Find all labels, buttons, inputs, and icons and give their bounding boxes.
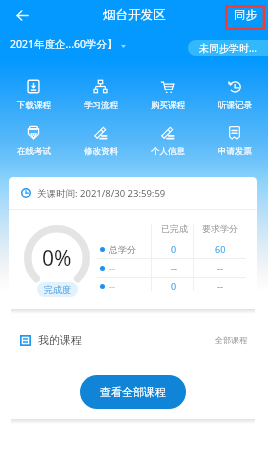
- button[interactable]: 下载课程: [0, 74, 67, 120]
- button[interactable]: 全部课程: [215, 335, 247, 345]
- button[interactable]: 申请发票: [201, 120, 268, 166]
- staticText: 学习流程: [84, 100, 118, 111]
- staticText: 0: [171, 280, 177, 292]
- button[interactable]: 查看全部课程: [80, 375, 186, 409]
- staticText: 未同步学时…: [199, 41, 257, 55]
- button[interactable]: 购买课程: [134, 74, 201, 120]
- button[interactable]: 修改资料: [67, 120, 134, 166]
- staticText: 要求学分: [202, 223, 238, 234]
- button[interactable]: 2021年度企...60学分】: [10, 37, 126, 51]
- staticText: 同步: [234, 8, 257, 22]
- staticText: --: [109, 262, 115, 274]
- button[interactable]: 在线考试: [0, 120, 67, 166]
- staticText: 总学分: [109, 244, 136, 255]
- staticText: 修改资料: [84, 146, 118, 157]
- button[interactable]: 听课记录: [201, 74, 268, 120]
- staticText: --: [109, 280, 115, 292]
- staticText: 申请发票: [218, 146, 252, 157]
- button[interactable]: 同步: [225, 3, 265, 27]
- staticText: 个人信息: [151, 146, 185, 157]
- staticText: 烟台开发区: [103, 7, 166, 23]
- staticText: 我的课程: [38, 333, 82, 347]
- staticText: 下载课程: [17, 100, 51, 111]
- staticText: --: [217, 262, 223, 274]
- staticText: 60: [215, 243, 226, 255]
- staticText: 完成度: [44, 284, 71, 295]
- staticText: 查看全部课程: [100, 385, 166, 399]
- staticText: 已完成: [161, 223, 188, 234]
- button[interactable]: 学习流程: [67, 74, 134, 120]
- button[interactable]: 个人信息: [134, 120, 201, 166]
- staticText: 2021年度企...60学分】: [10, 37, 118, 51]
- staticText: --: [171, 262, 177, 274]
- staticText: 在线考试: [17, 146, 51, 157]
- staticText: 0: [171, 243, 177, 255]
- staticText: 全部课程: [215, 335, 247, 345]
- button[interactable]: Back: [4, 0, 40, 30]
- staticText: 0%: [42, 244, 72, 273]
- staticText: 购买课程: [151, 100, 185, 111]
- button[interactable]: 未同步学时…: [188, 40, 268, 56]
- staticText: 关课时间: 2021/8/30 23:59:59: [37, 187, 166, 200]
- staticText: --: [217, 280, 223, 292]
- staticText: 听课记录: [218, 100, 252, 111]
